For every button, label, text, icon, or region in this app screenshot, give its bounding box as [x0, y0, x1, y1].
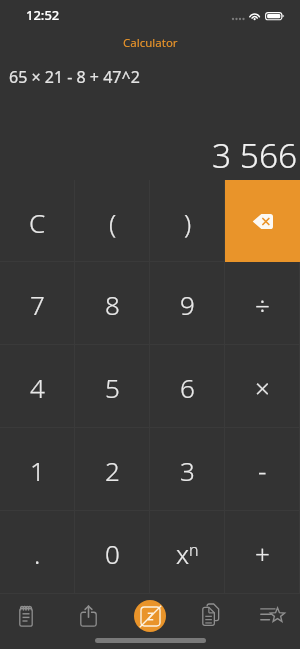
button[interactable]: 3	[150, 428, 225, 511]
staticText: 4	[30, 370, 45, 405]
button[interactable]: Backspace	[225, 180, 300, 262]
staticText: +	[255, 536, 270, 571]
button[interactable]: 8	[75, 262, 150, 345]
staticText: )	[184, 205, 192, 240]
button[interactable]: 1	[0, 428, 75, 511]
button[interactable]: Calculator	[0, 30, 300, 55]
staticText: .	[34, 536, 41, 571]
button[interactable]: +	[225, 511, 300, 594]
staticText: 7	[30, 287, 45, 322]
button[interactable]: 5	[75, 345, 150, 428]
staticText: ×	[255, 370, 270, 405]
button[interactable]: xn	[150, 511, 225, 594]
staticText: 2	[105, 453, 120, 488]
button[interactable]: -	[225, 428, 300, 511]
button[interactable]: 4	[0, 345, 75, 428]
other: Backspace	[252, 214, 273, 229]
staticText: ÷	[255, 287, 270, 322]
button[interactable]: 9	[150, 262, 225, 345]
staticText: 9	[180, 287, 195, 322]
staticText: 12:52	[26, 6, 60, 24]
staticText: Calculator	[123, 35, 178, 51]
staticText: -	[258, 453, 267, 488]
staticText: 65 × 21 - 8 + 47^2	[9, 66, 140, 88]
button[interactable]: Notes	[0, 595, 52, 637]
staticText: xn	[176, 536, 199, 571]
staticText: 6	[180, 370, 195, 405]
staticText: C	[29, 205, 46, 240]
staticText: 8	[105, 287, 120, 322]
button[interactable]: Share	[62, 595, 114, 637]
button[interactable]: 6	[150, 345, 225, 428]
button[interactable]: ÷	[225, 262, 300, 345]
button[interactable]: C	[0, 180, 75, 262]
button[interactable]: (	[75, 180, 150, 262]
button[interactable]: Calculator	[124, 595, 176, 637]
button[interactable]: Documents	[186, 595, 238, 637]
button[interactable]: 65 × 21 - 8 + 47^2	[0, 55, 300, 100]
staticText: 1	[30, 453, 45, 488]
staticText: 3 566	[212, 132, 298, 178]
button[interactable]: 0	[75, 511, 150, 594]
button[interactable]: Favorites	[248, 595, 300, 637]
staticText: (	[109, 205, 117, 240]
button[interactable]: .	[0, 511, 75, 594]
staticText: 3	[180, 453, 195, 488]
button[interactable]: )	[150, 180, 225, 262]
staticText: 0	[105, 536, 120, 571]
button[interactable]: 2	[75, 428, 150, 511]
staticText: 5	[105, 370, 120, 405]
button[interactable]: ×	[225, 345, 300, 428]
button[interactable]: 7	[0, 262, 75, 345]
